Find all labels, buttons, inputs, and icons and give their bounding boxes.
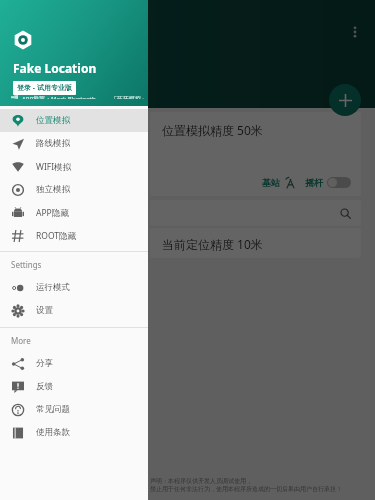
button[interactable]: 位置模拟 [0, 109, 148, 132]
button[interactable]: 运行模式 [0, 276, 148, 299]
staticText: 位置模拟精度 50米 [162, 122, 263, 138]
staticText: 声明：本程序仅供开发人员调试使用， [150, 477, 252, 485]
staticText: APP推荐：Mock Bluetooth —— 「蓝牙模拟」 [22, 95, 147, 99]
button[interactable]: 设置 [0, 299, 148, 322]
button[interactable]: 登录 - 试用专业版 [17, 83, 72, 93]
staticText: APP隐藏 [36, 207, 69, 219]
staticText: 反馈 [36, 381, 53, 392]
staticText: 运行模式 [36, 282, 70, 293]
staticText: WIFI模拟 [36, 161, 72, 173]
button[interactable]: 常见问题 [0, 398, 148, 421]
button[interactable] [150, 200, 361, 226]
staticText: 位置模拟 [36, 115, 70, 126]
button[interactable]: 使用条款 [0, 421, 148, 444]
staticText: 常见问题 [36, 404, 70, 415]
staticText: 分享 [36, 358, 53, 369]
staticText: 登录 - 试用专业版 [17, 83, 72, 93]
button[interactable]: More options [341, 18, 369, 46]
button[interactable]: 独立模拟 [0, 178, 148, 201]
staticText: 独立模拟 [36, 184, 70, 195]
staticText: Settings [11, 259, 42, 270]
button[interactable]: Add [329, 84, 361, 116]
staticText: 使用条款 [36, 427, 70, 438]
staticText: Fake Location [13, 60, 97, 76]
button[interactable]: 路线模拟 [0, 132, 148, 155]
staticText: More [11, 335, 31, 346]
button[interactable]: WIFI模拟 [0, 155, 148, 178]
button[interactable]: 反馈 [0, 375, 148, 398]
button[interactable] [327, 177, 351, 188]
staticText: 路线模拟 [36, 138, 70, 149]
staticText: 禁止用于任何非法行为，使用本程序所造成的一切后果由用户自行承担！ [150, 485, 342, 493]
staticText: 设置 [36, 305, 53, 316]
staticText: ROOT隐藏 [36, 230, 77, 242]
staticText: 当前定位精度 10米 [162, 236, 263, 252]
button[interactable]: 分享 [0, 352, 148, 375]
staticText: 摇杆 [305, 177, 323, 188]
staticText: 基站 [262, 177, 280, 188]
button[interactable]: APP隐藏 [0, 201, 148, 224]
button[interactable]: ROOT隐藏 [0, 224, 148, 247]
